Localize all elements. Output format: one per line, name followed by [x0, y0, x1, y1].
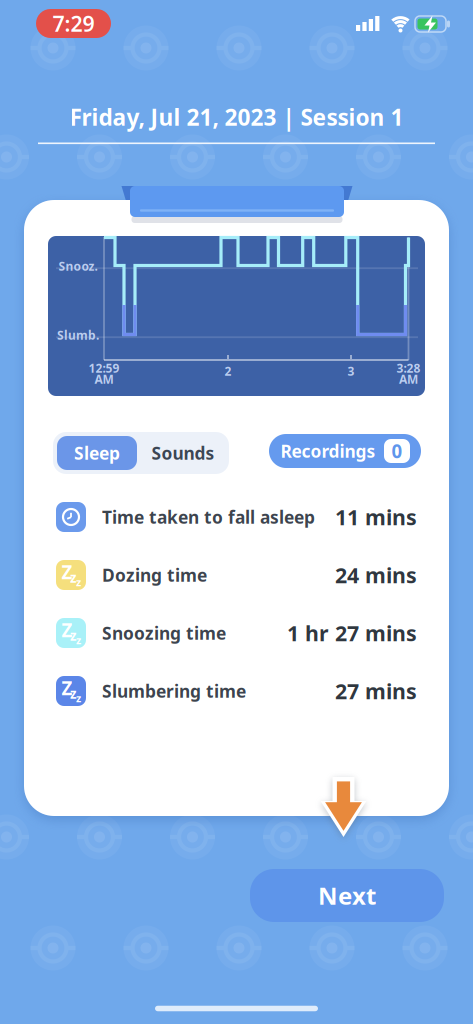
- button[interactable]: Next: [250, 869, 444, 922]
- staticText: Snoozing time: [102, 621, 226, 644]
- button[interactable]: Sounds: [141, 436, 225, 470]
- staticText: Snooz.: [58, 258, 97, 274]
- staticText: Friday, Jul 21, 2023 | Session 1: [69, 102, 403, 132]
- staticText: Recordings: [280, 439, 375, 462]
- staticText: Time taken to fall asleep: [102, 505, 315, 528]
- staticText: z: [70, 627, 77, 644]
- staticText: z: [76, 575, 81, 589]
- staticText: 1 hr 27 mins: [287, 619, 417, 647]
- button[interactable]: Sleep: [57, 436, 137, 470]
- staticText: 24 mins: [335, 561, 417, 589]
- staticText: Sounds: [151, 441, 214, 464]
- staticText: z: [76, 691, 81, 705]
- staticText: AM: [399, 371, 418, 387]
- staticText: 2: [224, 363, 231, 379]
- staticText: 0: [391, 439, 402, 463]
- staticText: Z: [61, 618, 72, 642]
- staticText: Next: [318, 880, 376, 911]
- staticText: Z: [61, 676, 72, 700]
- staticText: Slumbering time: [102, 679, 246, 702]
- button[interactable]: Recordings: [269, 434, 421, 468]
- staticText: Sleep: [74, 441, 120, 464]
- button[interactable]: 7:29: [36, 9, 111, 38]
- staticText: z: [76, 633, 81, 647]
- staticText: z: [70, 569, 77, 586]
- staticText: 3: [347, 363, 354, 379]
- staticText: 12:59: [88, 360, 119, 376]
- staticText: Slumb.: [57, 327, 99, 343]
- staticText: AM: [94, 371, 113, 387]
- staticText: 11 mins: [335, 503, 417, 531]
- staticText: 3:28: [396, 360, 420, 376]
- staticText: Z: [61, 560, 72, 584]
- staticText: 7:29: [52, 9, 94, 38]
- staticText: 27 mins: [335, 677, 417, 705]
- staticText: Dozing time: [102, 563, 207, 586]
- staticText: z: [70, 685, 77, 702]
